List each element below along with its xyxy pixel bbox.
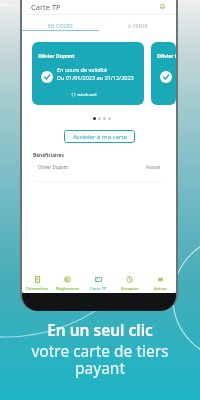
staticText: Situation xyxy=(121,286,139,292)
staticText: Bénéficiaires xyxy=(33,152,64,159)
staticText: Accéder à ma carte xyxy=(73,133,127,141)
staticText: En cours de validité xyxy=(57,66,108,73)
staticText: votre carte de tiers payant xyxy=(31,340,169,379)
staticText: Olivier Dupont xyxy=(157,53,176,60)
staticText: Règlements xyxy=(56,286,80,292)
staticText: Carte TP xyxy=(90,286,107,292)
button[interactable]: Carte TP xyxy=(83,268,114,293)
staticText: Autres xyxy=(154,286,167,292)
button[interactable]: Olivier Dupont xyxy=(22,162,176,172)
staticText: Carte TP xyxy=(31,2,61,12)
button[interactable]: Accéder à ma carte xyxy=(64,130,135,143)
staticText: Démarches xyxy=(26,286,49,292)
button[interactable]: Notifications xyxy=(157,1,168,12)
button[interactable]: Situation xyxy=(114,268,145,293)
staticText: Olivier Dupont xyxy=(38,164,69,170)
staticText: Olivier Dupont xyxy=(38,53,75,60)
staticText: En un seul clic xyxy=(47,319,153,340)
staticText: Du 01/01/2023 au 31/12/2023 xyxy=(57,74,134,81)
button[interactable]: Autres xyxy=(145,268,176,293)
button[interactable]: Démarches xyxy=(22,268,52,293)
staticText: À VENIR xyxy=(128,23,148,29)
staticText: Assuré xyxy=(146,164,160,170)
button[interactable]: EN COURS xyxy=(22,15,99,31)
button[interactable]: Règlements xyxy=(52,268,83,293)
button[interactable]: Olivier Dupont xyxy=(32,42,144,105)
staticText: mutuelle.santé xyxy=(77,93,97,97)
button[interactable]: À VENIR xyxy=(99,15,176,31)
button[interactable]: Olivier Dupont xyxy=(151,42,176,105)
staticText: EN COURS xyxy=(48,23,74,29)
